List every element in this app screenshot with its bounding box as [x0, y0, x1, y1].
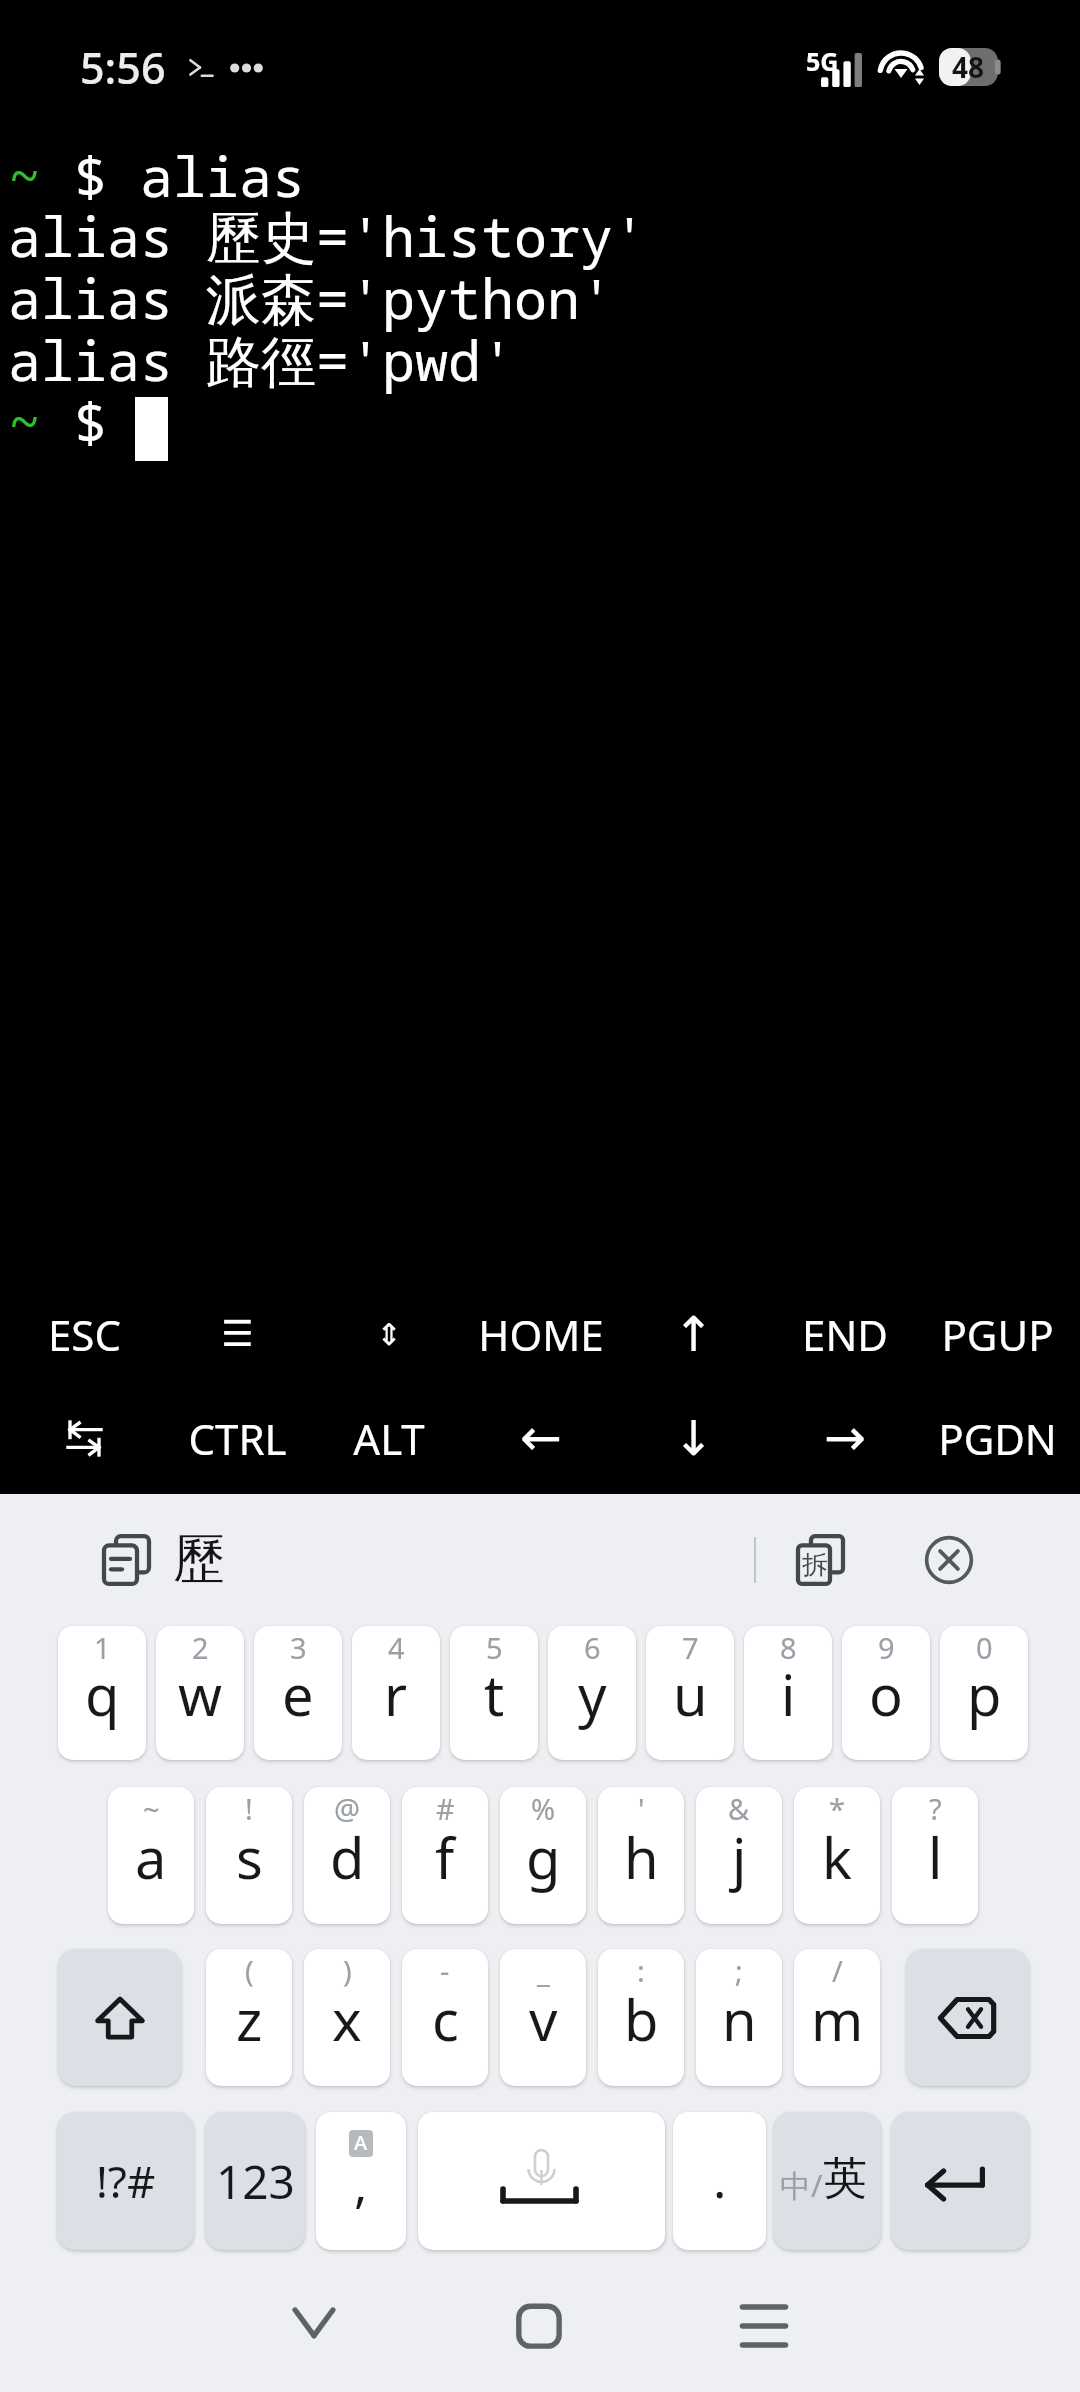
button[interactable]: 7: [646, 1626, 734, 1760]
staticText: 0: [976, 1628, 993, 1667]
staticText: z: [236, 1981, 263, 2057]
staticText: ~ $ alias alias 歷史='history' alias 派森='p…: [8, 138, 647, 459]
staticText: m: [811, 1981, 864, 2057]
button[interactable]: Split character: [783, 1522, 859, 1598]
staticText: :: [637, 1951, 645, 1990]
staticText: ←: [520, 1409, 562, 1467]
staticText: @: [334, 1789, 361, 1828]
staticText: b: [624, 1981, 659, 2057]
staticText: p: [967, 1656, 1002, 1732]
button[interactable]: Close keyboard: [911, 1522, 987, 1598]
button[interactable]: 3: [254, 1626, 342, 1760]
staticText: 48: [952, 48, 985, 86]
button[interactable]: (: [206, 1949, 292, 2086]
button[interactable]: /: [794, 1949, 880, 2086]
staticText: ESC: [48, 1306, 121, 1363]
staticText: c: [432, 1981, 459, 2057]
staticText: PGUP: [941, 1306, 1054, 1363]
button[interactable]: CTRL: [161, 1406, 313, 1470]
staticText: -: [440, 1951, 450, 1990]
staticText: ): [343, 1951, 352, 1990]
button[interactable]: Home: [488, 2276, 588, 2376]
staticText: u: [673, 1656, 708, 1732]
button[interactable]: Backspace: [906, 1949, 1029, 2086]
button[interactable]: !?#: [57, 2112, 194, 2250]
button[interactable]: ↑: [617, 1302, 769, 1366]
button[interactable]: Shift: [58, 1949, 181, 2086]
button[interactable]: 8: [744, 1626, 832, 1760]
staticText: ?: [929, 1789, 942, 1828]
staticText: 7: [682, 1628, 699, 1667]
button[interactable]: 2: [156, 1626, 244, 1760]
staticText: PGDN: [938, 1410, 1057, 1467]
button[interactable]: #: [402, 1787, 488, 1924]
staticText: t: [484, 1656, 505, 1732]
staticText: e: [282, 1656, 314, 1732]
staticText: ~: [143, 1789, 160, 1828]
button[interactable]: _: [500, 1949, 586, 2086]
staticText: v: [529, 1981, 558, 2057]
button[interactable]: ⇕: [313, 1302, 465, 1366]
staticText: HOME: [478, 1306, 604, 1363]
button[interactable]: ~: [108, 1787, 194, 1924]
button[interactable]: &: [696, 1787, 782, 1924]
button[interactable]: ;: [696, 1949, 782, 2086]
button[interactable]: ): [304, 1949, 390, 2086]
staticText: 9: [878, 1628, 895, 1667]
button[interactable]: 5: [450, 1626, 538, 1760]
button[interactable]: @: [304, 1787, 390, 1924]
button[interactable]: .: [673, 2112, 766, 2250]
button[interactable]: Hide keyboard: [264, 2276, 364, 2376]
button[interactable]: 1: [58, 1626, 146, 1760]
button[interactable]: 中/: [773, 2112, 881, 2250]
button[interactable]: →: [769, 1406, 921, 1470]
staticText: ☰: [221, 1313, 254, 1355]
button[interactable]: :: [598, 1949, 684, 2086]
button[interactable]: ESC: [8, 1302, 161, 1366]
button[interactable]: -: [402, 1949, 488, 2086]
button[interactable]: A: [316, 2112, 406, 2250]
staticText: 英: [823, 2151, 867, 2206]
button[interactable]: 0: [940, 1626, 1028, 1760]
button[interactable]: *: [794, 1787, 880, 1924]
staticText: ↓: [673, 1410, 714, 1466]
button[interactable]: END: [769, 1302, 921, 1366]
staticText: h: [624, 1819, 659, 1895]
staticText: 6: [584, 1628, 601, 1667]
button[interactable]: Space: [418, 2112, 665, 2250]
button[interactable]: Enter: [891, 2112, 1029, 2250]
button[interactable]: Menu: [714, 2276, 814, 2376]
staticText: l: [928, 1819, 943, 1895]
button[interactable]: ←: [465, 1406, 617, 1470]
staticText: A: [354, 2130, 368, 2156]
staticText: 5G: [806, 44, 839, 78]
button[interactable]: ALT: [313, 1406, 465, 1470]
staticText: 2: [192, 1628, 209, 1667]
button[interactable]: 4: [352, 1626, 440, 1760]
staticText: 歷: [173, 1527, 225, 1593]
button[interactable]: 6: [548, 1626, 636, 1760]
staticText: 123: [216, 2150, 295, 2213]
button[interactable]: 9: [842, 1626, 930, 1760]
button[interactable]: HOME: [465, 1302, 617, 1366]
staticText: q: [85, 1656, 120, 1732]
staticText: !: [245, 1789, 253, 1828]
button[interactable]: PGUP: [921, 1302, 1073, 1366]
staticText: s: [236, 1819, 263, 1895]
staticText: .: [713, 2145, 727, 2213]
staticText: o: [869, 1656, 903, 1732]
button[interactable]: Clipboard history: [102, 1512, 225, 1608]
button[interactable]: PGDN: [921, 1406, 1073, 1470]
staticText: d: [330, 1819, 365, 1895]
button[interactable]: ☰: [161, 1302, 313, 1366]
button[interactable]: !: [206, 1787, 292, 1924]
staticText: /: [832, 1951, 843, 1990]
button[interactable]: ?: [892, 1787, 978, 1924]
button[interactable]: ': [598, 1787, 684, 1924]
button[interactable]: ↓: [617, 1406, 769, 1470]
button[interactable]: Tab: [8, 1406, 161, 1470]
button[interactable]: 123: [205, 2112, 305, 2250]
staticText: 4: [388, 1628, 405, 1667]
staticText: g: [526, 1819, 561, 1895]
button[interactable]: %: [500, 1787, 586, 1924]
